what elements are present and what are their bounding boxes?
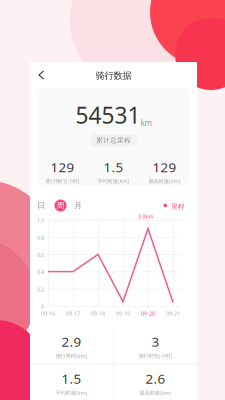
staticText: 平均时速(km): [55, 389, 87, 396]
staticText: 09-21: [166, 310, 180, 317]
staticText: km: [140, 117, 151, 128]
staticText: 1.5: [103, 158, 123, 176]
button[interactable]: 日: [35, 199, 47, 211]
staticText: 54531: [75, 100, 140, 130]
staticText: 骑行时长(小时): [138, 352, 172, 359]
staticText: 0.9km: [138, 213, 153, 220]
staticText: 0.8: [37, 234, 44, 241]
staticText: 3: [151, 333, 159, 350]
staticText: 最高时速(km): [148, 177, 180, 185]
staticText: 09-18: [91, 310, 105, 317]
staticText: 1.5: [61, 370, 81, 387]
staticText: 129: [50, 158, 74, 176]
staticText: 累计骑行(小时): [45, 177, 79, 185]
staticText: 129: [152, 158, 176, 176]
staticText: 09-20: [141, 310, 155, 317]
staticText: 最高时速(km): [139, 389, 171, 396]
staticText: 里程: [171, 202, 185, 211]
staticText: 09-16: [41, 310, 55, 317]
staticText: 2.9: [61, 333, 81, 350]
staticText: 月: [74, 201, 82, 210]
button[interactable]: 月: [72, 199, 84, 211]
button[interactable]: Back: [32, 65, 50, 85]
staticText: 1.0: [37, 217, 44, 224]
staticText: 2.6: [145, 370, 165, 387]
staticText: 平均时速(km): [97, 177, 129, 185]
staticText: 骑行里程(km): [55, 352, 87, 359]
staticText: 骑行数据: [95, 70, 131, 81]
staticText: 0.2: [37, 286, 44, 293]
staticText: 0: [41, 303, 44, 310]
staticText: 09-19: [116, 310, 130, 317]
staticText: 09-17: [66, 310, 80, 317]
staticText: 累计总里程: [96, 136, 131, 144]
staticText: 0.4: [37, 269, 44, 276]
staticText: 周: [56, 201, 64, 210]
staticText: 0.6: [37, 251, 44, 258]
button[interactable]: 周: [54, 199, 66, 211]
staticText: 日: [37, 201, 45, 210]
